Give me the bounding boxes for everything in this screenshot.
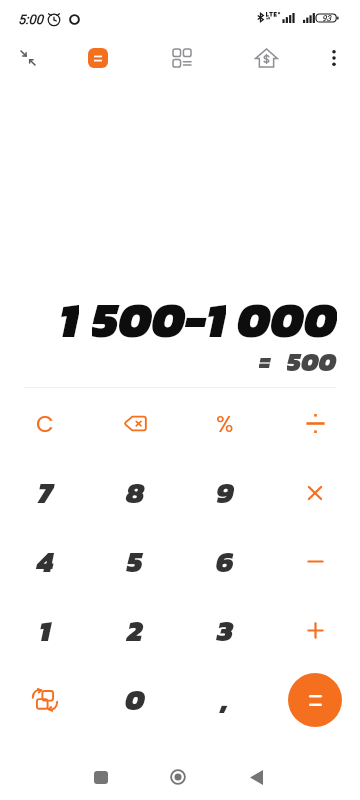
button[interactable]: 9 xyxy=(180,458,270,527)
staticText: 7 xyxy=(38,471,53,514)
button[interactable]: 1 xyxy=(0,596,90,665)
staticText: 3 xyxy=(217,609,233,652)
button[interactable]: Convert units xyxy=(0,665,90,734)
button[interactable]: 0 xyxy=(90,665,180,734)
staticText: 500 xyxy=(287,342,337,376)
button[interactable]: Calculator xyxy=(74,35,122,81)
staticText: 1 xyxy=(59,283,79,343)
button[interactable]: Back xyxy=(231,754,281,800)
button[interactable]: % xyxy=(180,389,270,458)
button[interactable]: More options xyxy=(314,35,354,81)
staticText: C xyxy=(36,408,54,440)
button[interactable]: 8 xyxy=(90,458,180,527)
button[interactable]: 5 xyxy=(90,527,180,596)
button[interactable]: Home xyxy=(153,754,203,800)
staticText: 8 xyxy=(126,471,145,514)
button[interactable]: Backspace xyxy=(90,389,180,458)
button[interactable]: Mortgage calculator xyxy=(242,35,290,81)
staticText: 500-1 xyxy=(92,283,226,343)
staticText: 0 xyxy=(125,678,145,721)
button[interactable]: Recents xyxy=(76,754,126,800)
staticText: 93 xyxy=(322,14,331,23)
staticText: 1 xyxy=(39,609,51,652)
staticText: 5:00 xyxy=(18,12,44,27)
button[interactable]: Multiply xyxy=(270,458,360,527)
button[interactable]: Minus xyxy=(270,527,360,596)
button[interactable]: 7 xyxy=(0,458,90,527)
staticText: 000 xyxy=(237,283,337,343)
staticText: , xyxy=(221,678,229,721)
staticText: 9 xyxy=(216,471,234,514)
button[interactable]: Unit converter xyxy=(158,35,206,81)
staticText: 4 xyxy=(37,540,54,583)
button[interactable]: Divide xyxy=(270,389,360,458)
button[interactable]: Equals xyxy=(270,665,360,734)
staticText: 2 xyxy=(127,609,143,652)
staticText: = xyxy=(259,342,271,376)
button[interactable]: 3 xyxy=(180,596,270,665)
staticText: 5 xyxy=(127,540,143,583)
button[interactable]: 6 xyxy=(180,527,270,596)
button[interactable]: 4 xyxy=(0,527,90,596)
staticText: 6 xyxy=(216,540,234,583)
button[interactable]: C xyxy=(0,389,90,458)
staticText: % xyxy=(216,408,234,440)
button[interactable]: , xyxy=(180,665,270,734)
button[interactable]: Plus xyxy=(270,596,360,665)
button[interactable]: 2 xyxy=(90,596,180,665)
button[interactable]: Collapse xyxy=(0,35,56,81)
